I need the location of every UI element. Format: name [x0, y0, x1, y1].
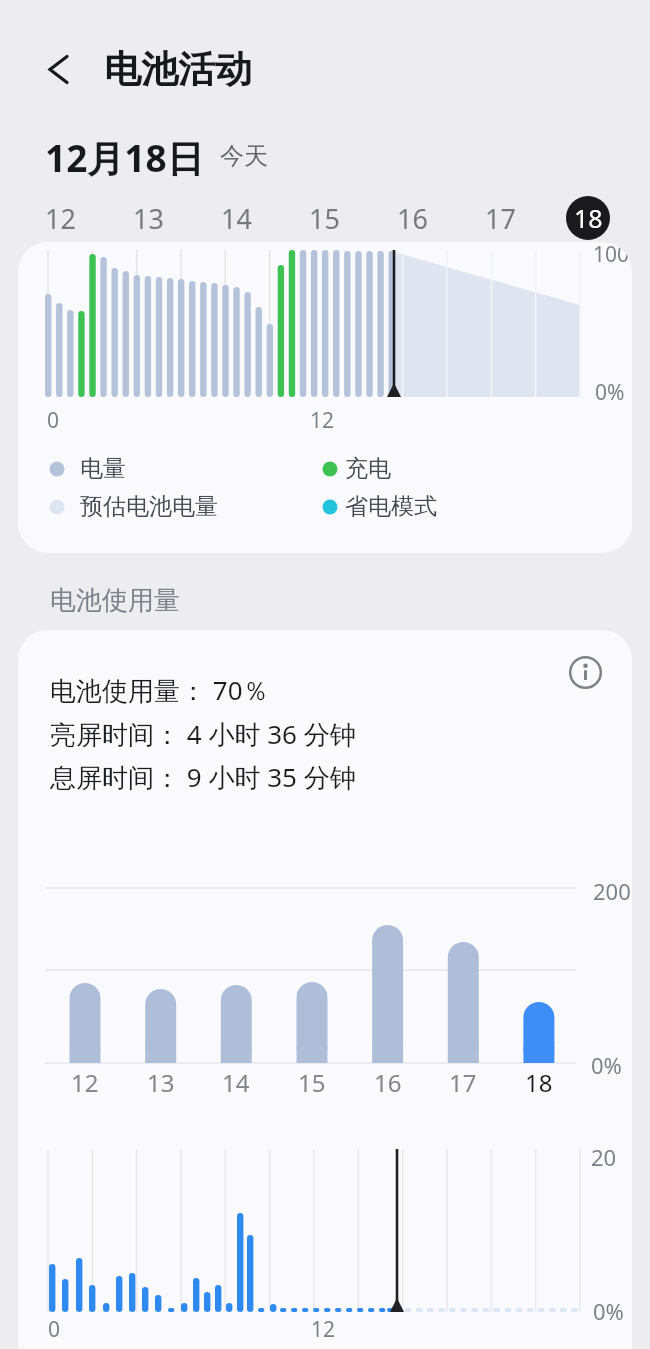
staticText: 12 [71, 1066, 99, 1098]
staticText: 电池活动 [104, 46, 252, 93]
staticText: 14 [221, 200, 252, 237]
staticText: 13 [133, 200, 164, 237]
button[interactable] [565, 652, 606, 693]
button[interactable]: 18 [566, 196, 610, 240]
staticText: 省电模式 [345, 492, 437, 521]
staticText: 预估电池电量 [80, 492, 218, 521]
staticText: 电量 [80, 454, 126, 483]
staticText: 16 [397, 200, 428, 237]
staticText: 16 [374, 1066, 402, 1098]
staticText: 0% [591, 1050, 622, 1080]
staticText: 息屏时间： 9 小时 35 分钟 [50, 759, 356, 795]
staticText: 17 [449, 1066, 477, 1098]
staticText: 18 [525, 1066, 553, 1098]
staticText: 今天 [220, 141, 268, 171]
staticText: 电池使用量： 70％ [50, 672, 269, 708]
staticText: 充电 [345, 454, 391, 483]
staticText: 18 [574, 201, 603, 235]
staticText: 12 [45, 200, 76, 237]
button[interactable]: 12 [28, 196, 92, 240]
staticText: 电池使用量 [50, 584, 180, 617]
staticText: 15 [309, 200, 340, 237]
button[interactable]: 17 [468, 196, 532, 240]
staticText: 12 [310, 406, 335, 435]
staticText: 17 [485, 200, 516, 237]
button[interactable] [36, 46, 80, 92]
staticText: 亮屏时间： 4 小时 36 分钟 [50, 716, 356, 752]
button[interactable]: 15 [292, 196, 356, 240]
staticText: 100 [593, 242, 630, 269]
staticText: 0 [47, 406, 60, 435]
staticText: 0% [595, 378, 625, 407]
staticText: 0 [48, 1315, 61, 1344]
staticText: 12 [311, 1315, 336, 1344]
staticText: 14 [222, 1066, 250, 1098]
staticText: 20 [591, 1142, 617, 1172]
staticText: 12月18日 [45, 132, 204, 183]
staticText: 0% [593, 1296, 624, 1326]
staticText: 15 [298, 1066, 326, 1098]
button[interactable]: 16 [380, 196, 444, 240]
staticText: 13 [147, 1066, 175, 1098]
button[interactable]: 13 [116, 196, 180, 240]
button[interactable]: 14 [204, 196, 268, 240]
staticText: 200 [593, 876, 631, 906]
